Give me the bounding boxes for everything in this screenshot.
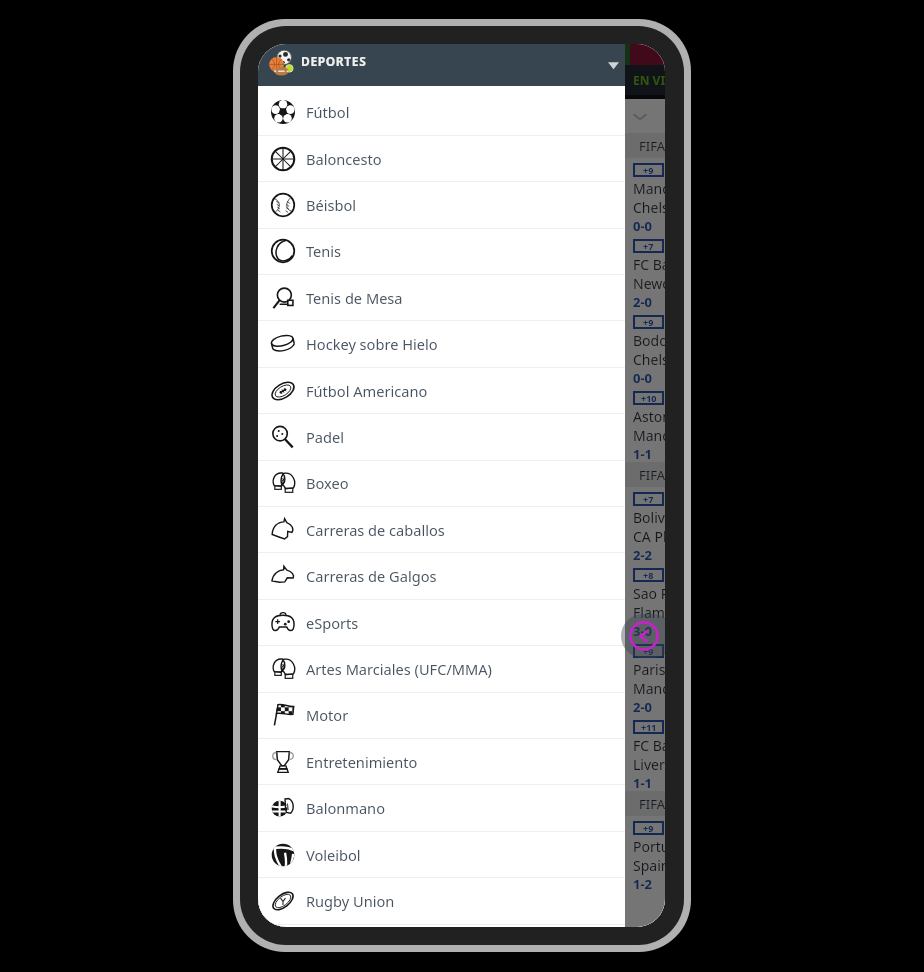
staticText: Manchester U	[633, 426, 665, 445]
staticText: FC Barcelona	[633, 255, 665, 274]
staticText: 1-1	[633, 774, 653, 791]
staticText: 1-1	[633, 445, 653, 462]
staticText: 3-0	[633, 622, 653, 639]
button[interactable]: Rugby Union	[258, 878, 625, 924]
staticText: Liverpool	[633, 755, 665, 774]
staticText: Spain	[633, 856, 665, 875]
staticText: eSports	[306, 613, 359, 633]
staticText: Entretenimiento	[306, 752, 418, 772]
staticText: Fútbol	[306, 102, 350, 122]
staticText: Voleibol	[306, 845, 361, 865]
staticText: Balonmano	[306, 798, 385, 818]
staticText: +7	[643, 493, 654, 505]
button[interactable]: Balonmano	[258, 785, 625, 831]
staticText: Bodo Glimt	[633, 331, 665, 350]
staticText: Carreras de Galgos	[306, 566, 437, 586]
staticText: +9	[643, 645, 654, 657]
staticText: Manchester	[633, 679, 665, 698]
staticText: +9	[643, 316, 654, 328]
staticText: +9	[643, 822, 654, 834]
staticText: +11	[641, 721, 657, 733]
staticText: Boxeo	[306, 473, 349, 493]
staticText: FIFA Copa Libertadores	[639, 466, 665, 484]
staticText: Sao Paulo	[633, 584, 665, 603]
staticText: Béisbol	[306, 195, 357, 215]
button[interactable]: Baloncesto	[258, 136, 625, 182]
button[interactable]: Carreras de caballos	[258, 507, 625, 553]
staticText: Rugby Union	[306, 891, 395, 911]
staticText: DESTACADOS	[390, 72, 468, 88]
staticText: CA Platense	[633, 527, 665, 546]
button[interactable]: eSports	[258, 600, 625, 646]
staticText: 2-0	[633, 698, 653, 715]
button[interactable]: Tenis	[258, 228, 625, 274]
staticText: Hockey sobre Hielo	[306, 334, 438, 354]
staticText: Tenis de Mesa	[306, 288, 403, 308]
staticText: 2-0	[633, 293, 653, 310]
staticText: FIFA Nations League	[639, 795, 665, 813]
staticText: 0-0	[633, 217, 653, 234]
staticText: +10	[641, 392, 657, 404]
staticText: Bolivar	[633, 508, 665, 527]
button[interactable]: Padel	[258, 414, 625, 460]
staticText: 2-2	[633, 546, 653, 563]
staticText: EN VIVO	[633, 72, 665, 88]
staticText: Baloncesto	[306, 149, 382, 169]
staticText: +8	[643, 569, 654, 581]
staticText: Paris SG	[633, 660, 665, 679]
staticText: Padel	[306, 427, 344, 447]
staticText: +9	[643, 164, 654, 176]
staticText: Chelsea	[633, 198, 665, 217]
button[interactable]: Cerrar menú	[621, 614, 665, 658]
staticText: PRÓXIMOS	[278, 72, 343, 88]
staticText: Newcastle	[633, 274, 665, 293]
button[interactable]: Entretenimiento	[258, 739, 625, 785]
staticText: Portugal	[633, 837, 665, 856]
button[interactable]: DEPORTES	[258, 44, 625, 86]
staticText: Artes Marciales (UFC/MMA)	[306, 659, 492, 679]
button[interactable]: Fútbol Americano	[258, 368, 625, 414]
staticText: +7	[643, 240, 654, 252]
staticText: 0-0	[633, 369, 653, 386]
staticText: Flamengo	[633, 603, 665, 622]
staticText: Aston Villa	[633, 407, 665, 426]
staticText: Carreras de caballos	[306, 520, 445, 540]
staticText: DEPORTES	[301, 53, 367, 69]
button[interactable]: Voleibol	[258, 832, 625, 878]
button[interactable]: Hockey sobre Hielo	[258, 321, 625, 367]
staticText: Motor	[306, 705, 349, 725]
staticText: Chelsea	[633, 350, 665, 369]
button[interactable]: Tenis de Mesa	[258, 275, 625, 321]
staticText: FC Bayern	[633, 736, 665, 755]
staticText: 1-2	[633, 875, 653, 892]
button[interactable]: Fútbol	[258, 89, 625, 135]
staticText: Manchester City	[633, 179, 665, 198]
button[interactable]: Motor	[258, 692, 625, 738]
staticText: Fútbol Americano	[306, 381, 428, 401]
button[interactable]: Boxeo	[258, 460, 625, 506]
button[interactable]: Carreras de Galgos	[258, 553, 625, 599]
button[interactable]: Béisbol	[258, 182, 625, 228]
button[interactable]: Artes Marciales (UFC/MMA)	[258, 646, 625, 692]
staticText: FIFA Club World Cup	[639, 137, 665, 155]
staticText: Tenis	[306, 241, 342, 261]
